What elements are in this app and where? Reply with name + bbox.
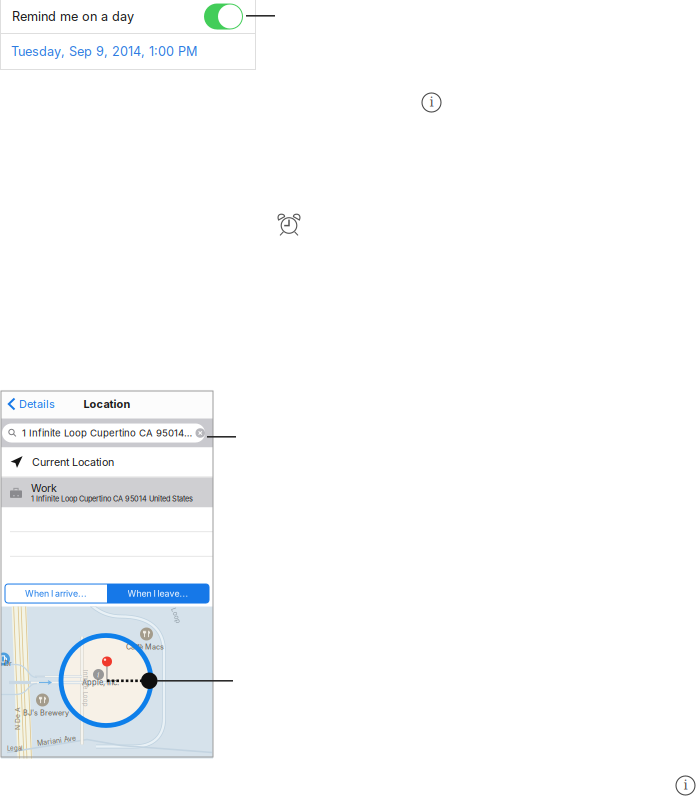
staticText: Location: [83, 397, 130, 411]
staticText: Details: [19, 397, 55, 411]
staticText: 1 Infinite Loop Cupertino CA 95014 Unite…: [31, 494, 193, 503]
button[interactable]: Details: [1, 391, 55, 417]
button[interactable]: Current Location: [1, 447, 213, 476]
button[interactable]: 1 Infinite Loop Cupertino CA 95014…: [5, 423, 208, 442]
staticText: 1 Infinite Loop Cupertino CA 95014…: [22, 427, 192, 439]
staticText: Infinite Loop: [67, 684, 104, 692]
button[interactable]: Remind me on a day: [0, 0, 256, 33]
staticText: When I leave...: [127, 588, 188, 599]
staticText: N De A: [6, 714, 29, 723]
staticText: Caffè Macs: [126, 642, 164, 651]
staticText: BJ's Brewery: [23, 708, 69, 717]
button[interactable]: When I arrive...: [5, 584, 107, 603]
staticText: Apple, Inc.: [82, 678, 119, 687]
staticText: Mariani Ave: [37, 736, 76, 745]
button[interactable]: Work: [1, 477, 213, 507]
button[interactable]: Tuesday, Sep 9, 2014, 1:00 PM: [0, 34, 256, 69]
staticText: When I arrive...: [25, 588, 87, 599]
staticText: e Loop: [164, 608, 186, 617]
staticText: n Dr: [0, 659, 12, 668]
staticText: Legal: [7, 744, 22, 752]
button[interactable]: When I leave...: [107, 584, 209, 603]
staticText: Work: [31, 482, 57, 494]
staticText: Tuesday, Sep 9, 2014, 1:00 PM: [11, 44, 197, 59]
staticText: Remind me on a day: [12, 9, 134, 24]
staticText: i: [97, 670, 100, 679]
staticText: i: [429, 94, 433, 110]
staticText: i: [683, 777, 687, 793]
staticText: Current Location: [32, 455, 114, 468]
